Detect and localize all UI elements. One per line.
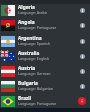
button[interactable]: Info bbox=[78, 52, 86, 60]
button[interactable]: Argentina bbox=[18, 36, 78, 50]
staticText: Language: German bbox=[18, 71, 51, 76]
staticText: Language: Bulgarian bbox=[18, 86, 54, 91]
staticText: Austria bbox=[18, 65, 36, 71]
staticText: Argentina bbox=[18, 35, 42, 41]
staticText: Bulgaria bbox=[18, 80, 38, 86]
staticText: Angola bbox=[18, 19, 35, 25]
button[interactable]: Angola bbox=[18, 20, 78, 34]
staticText: Language: Portuguese bbox=[18, 25, 57, 30]
button[interactable]: Info bbox=[78, 82, 86, 90]
staticText: Australia bbox=[18, 50, 40, 56]
button[interactable]: Info bbox=[78, 37, 86, 45]
staticText: Language: Portuguese bbox=[18, 101, 57, 106]
button[interactable]: Info bbox=[78, 21, 86, 29]
button[interactable]: Brazil bbox=[18, 96, 78, 110]
button[interactable]: Austria bbox=[18, 66, 78, 80]
button[interactable]: Add bbox=[78, 97, 86, 105]
staticText: Brazil bbox=[18, 95, 32, 101]
staticText: Algeria bbox=[18, 4, 35, 10]
staticText: Language: Spanish bbox=[18, 41, 50, 46]
staticText: Language: Arabic bbox=[18, 10, 48, 15]
button[interactable]: Bulgaria bbox=[18, 81, 78, 95]
button[interactable]: Info bbox=[78, 97, 86, 105]
staticText: Language: English bbox=[18, 56, 49, 61]
button[interactable]: Australia bbox=[18, 51, 78, 65]
button[interactable]: Algeria bbox=[18, 5, 78, 19]
button[interactable]: Info bbox=[78, 67, 86, 75]
button[interactable]: Info bbox=[78, 6, 86, 14]
